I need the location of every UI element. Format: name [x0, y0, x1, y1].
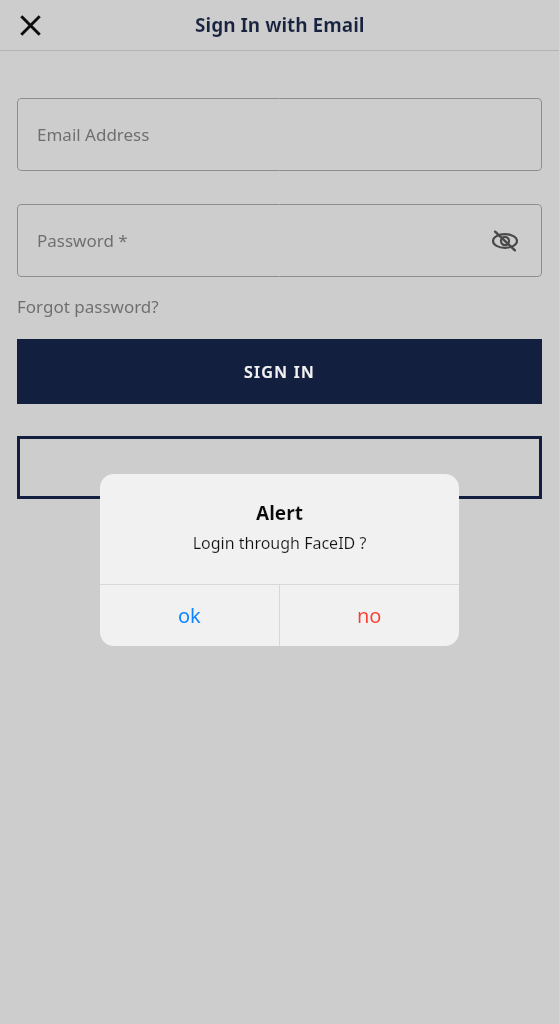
- staticText: ok: [178, 602, 201, 629]
- staticText: no: [357, 602, 382, 629]
- staticText: Email Address: [37, 123, 150, 146]
- staticText: SIGN IN: [244, 361, 315, 383]
- button[interactable]: Show password: [488, 224, 522, 258]
- staticText: Password *: [37, 229, 128, 252]
- button[interactable]: ok: [100, 585, 279, 646]
- staticText: Forgot password?: [17, 295, 159, 318]
- staticText: Alert: [100, 500, 459, 526]
- button[interactable]: no: [280, 585, 459, 646]
- button[interactable]: [17, 436, 542, 499]
- staticText: Sign In with Email: [195, 12, 365, 38]
- button[interactable]: Email Address: [17, 98, 542, 171]
- button[interactable]: Close: [8, 3, 52, 47]
- button[interactable]: Password *: [17, 204, 542, 277]
- button[interactable]: Forgot password?: [17, 295, 159, 318]
- staticText: Login through FaceID ?: [100, 532, 459, 554]
- button[interactable]: SIGN IN: [17, 339, 542, 404]
